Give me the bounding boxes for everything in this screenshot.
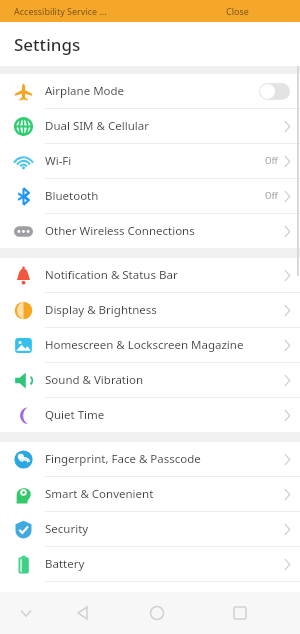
button[interactable]: Display & Brightness	[0, 293, 300, 328]
staticText: Quiet Time	[45, 407, 284, 423]
staticText: Dual SIM & Cellular	[45, 118, 284, 134]
staticText: Airplane Mode	[45, 83, 259, 99]
staticText: Off	[265, 190, 278, 202]
button[interactable]: Dual SIM & Cellular	[0, 109, 300, 144]
button[interactable]: Fingerprint, Face & Passcode	[0, 442, 300, 477]
button[interactable]: Sound & Vibration	[0, 363, 300, 398]
staticText: Battery	[45, 556, 284, 572]
button[interactable]: Airplane Mode toggle, off	[259, 83, 290, 100]
button[interactable]: Security	[0, 512, 300, 547]
staticText: Other Wireless Connections	[45, 223, 284, 239]
staticText: Close	[226, 5, 249, 17]
staticText: Fingerprint, Face & Passcode	[45, 451, 284, 467]
staticText: Homescreen & Lockscreen Magazine	[45, 337, 284, 353]
button[interactable]: Airplane Mode	[0, 74, 300, 109]
staticText: Accessibility Service ...	[14, 5, 107, 17]
button[interactable]: Notification & Status Bar	[0, 258, 300, 293]
staticText: Off	[265, 155, 278, 167]
button[interactable]: Homescreen & Lockscreen Magazine	[0, 328, 300, 363]
staticText: Sound & Vibration	[45, 372, 284, 388]
button[interactable]: Hide keyboard	[0, 592, 52, 634]
button[interactable]: Bluetooth	[0, 179, 300, 214]
button[interactable]: Battery	[0, 547, 300, 582]
button[interactable]: Smart & Convenient	[0, 477, 300, 512]
staticText: Security	[45, 521, 284, 537]
staticText: Smart & Convenient	[45, 486, 284, 502]
staticText: Settings	[14, 33, 81, 56]
button[interactable]: Home	[114, 592, 200, 634]
button[interactable]: Recents	[200, 592, 280, 634]
button[interactable]: Quiet Time	[0, 398, 300, 432]
button[interactable]: Back	[52, 592, 114, 634]
button[interactable]: Close	[222, 2, 253, 20]
staticText: Notification & Status Bar	[45, 267, 284, 283]
staticText: Bluetooth	[45, 188, 265, 204]
staticText: Display & Brightness	[45, 302, 284, 318]
button[interactable]: Wi-Fi	[0, 144, 300, 179]
staticText: Wi-Fi	[45, 153, 265, 169]
button[interactable]: Other Wireless Connections	[0, 214, 300, 248]
